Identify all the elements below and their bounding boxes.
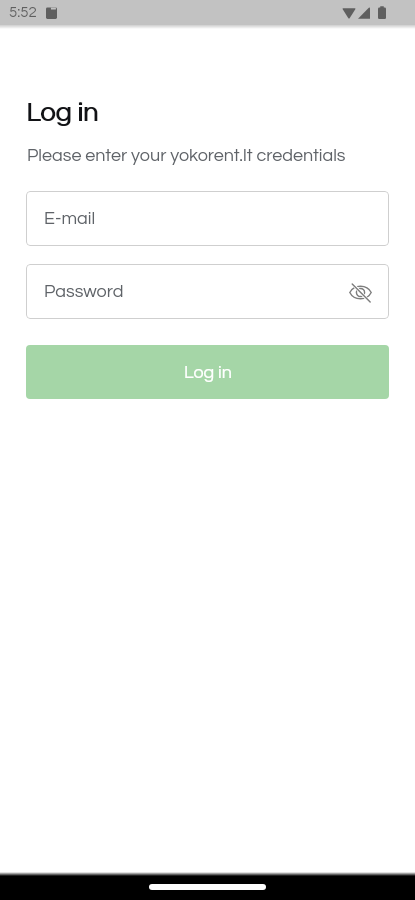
staticText: Log in: [184, 363, 232, 382]
button[interactable]: Password: [26, 264, 389, 319]
staticText: Password: [44, 282, 124, 301]
staticText: 5:52: [9, 5, 37, 20]
button[interactable]: Log in: [26, 345, 389, 399]
staticText: Log in: [27, 99, 99, 127]
staticText: Log in: [26, 99, 98, 127]
button[interactable]: Show password: [343, 275, 377, 309]
staticText: E-mail: [44, 209, 96, 228]
staticText: Please enter your yokorent.lt credential…: [27, 146, 346, 165]
button[interactable]: E-mail: [26, 191, 389, 246]
